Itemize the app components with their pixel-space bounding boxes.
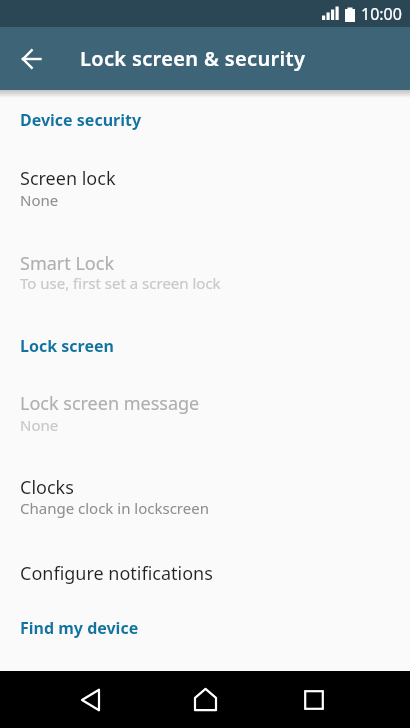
button[interactable]: [181, 671, 229, 728]
staticText: To use, first set a screen lock: [20, 273, 221, 293]
button[interactable]: Screen lock: [0, 152, 410, 224]
staticText: 10:00: [361, 3, 402, 25]
button[interactable]: Configure notifications: [0, 549, 410, 597]
staticText: Clocks: [20, 475, 74, 500]
staticText: None: [20, 190, 59, 210]
staticText: None: [20, 415, 59, 435]
button[interactable]: Smart Lock: [0, 237, 410, 309]
button[interactable]: [290, 671, 338, 728]
button[interactable]: [66, 671, 114, 728]
staticText: Smart Lock: [20, 251, 114, 276]
staticText: Lock screen & security: [80, 45, 306, 72]
staticText: Change clock in lockscreen: [20, 498, 209, 518]
button[interactable]: Lock screen message: [0, 377, 410, 449]
staticText: Find my device: [20, 617, 139, 639]
staticText: Lock screen message: [20, 391, 200, 416]
staticText: Configure notifications: [20, 561, 213, 586]
button[interactable]: Clocks: [0, 461, 410, 533]
button[interactable]: [14, 41, 50, 77]
staticText: Device security: [20, 109, 142, 131]
staticText: Screen lock: [20, 166, 116, 191]
staticText: Lock screen: [20, 335, 114, 357]
